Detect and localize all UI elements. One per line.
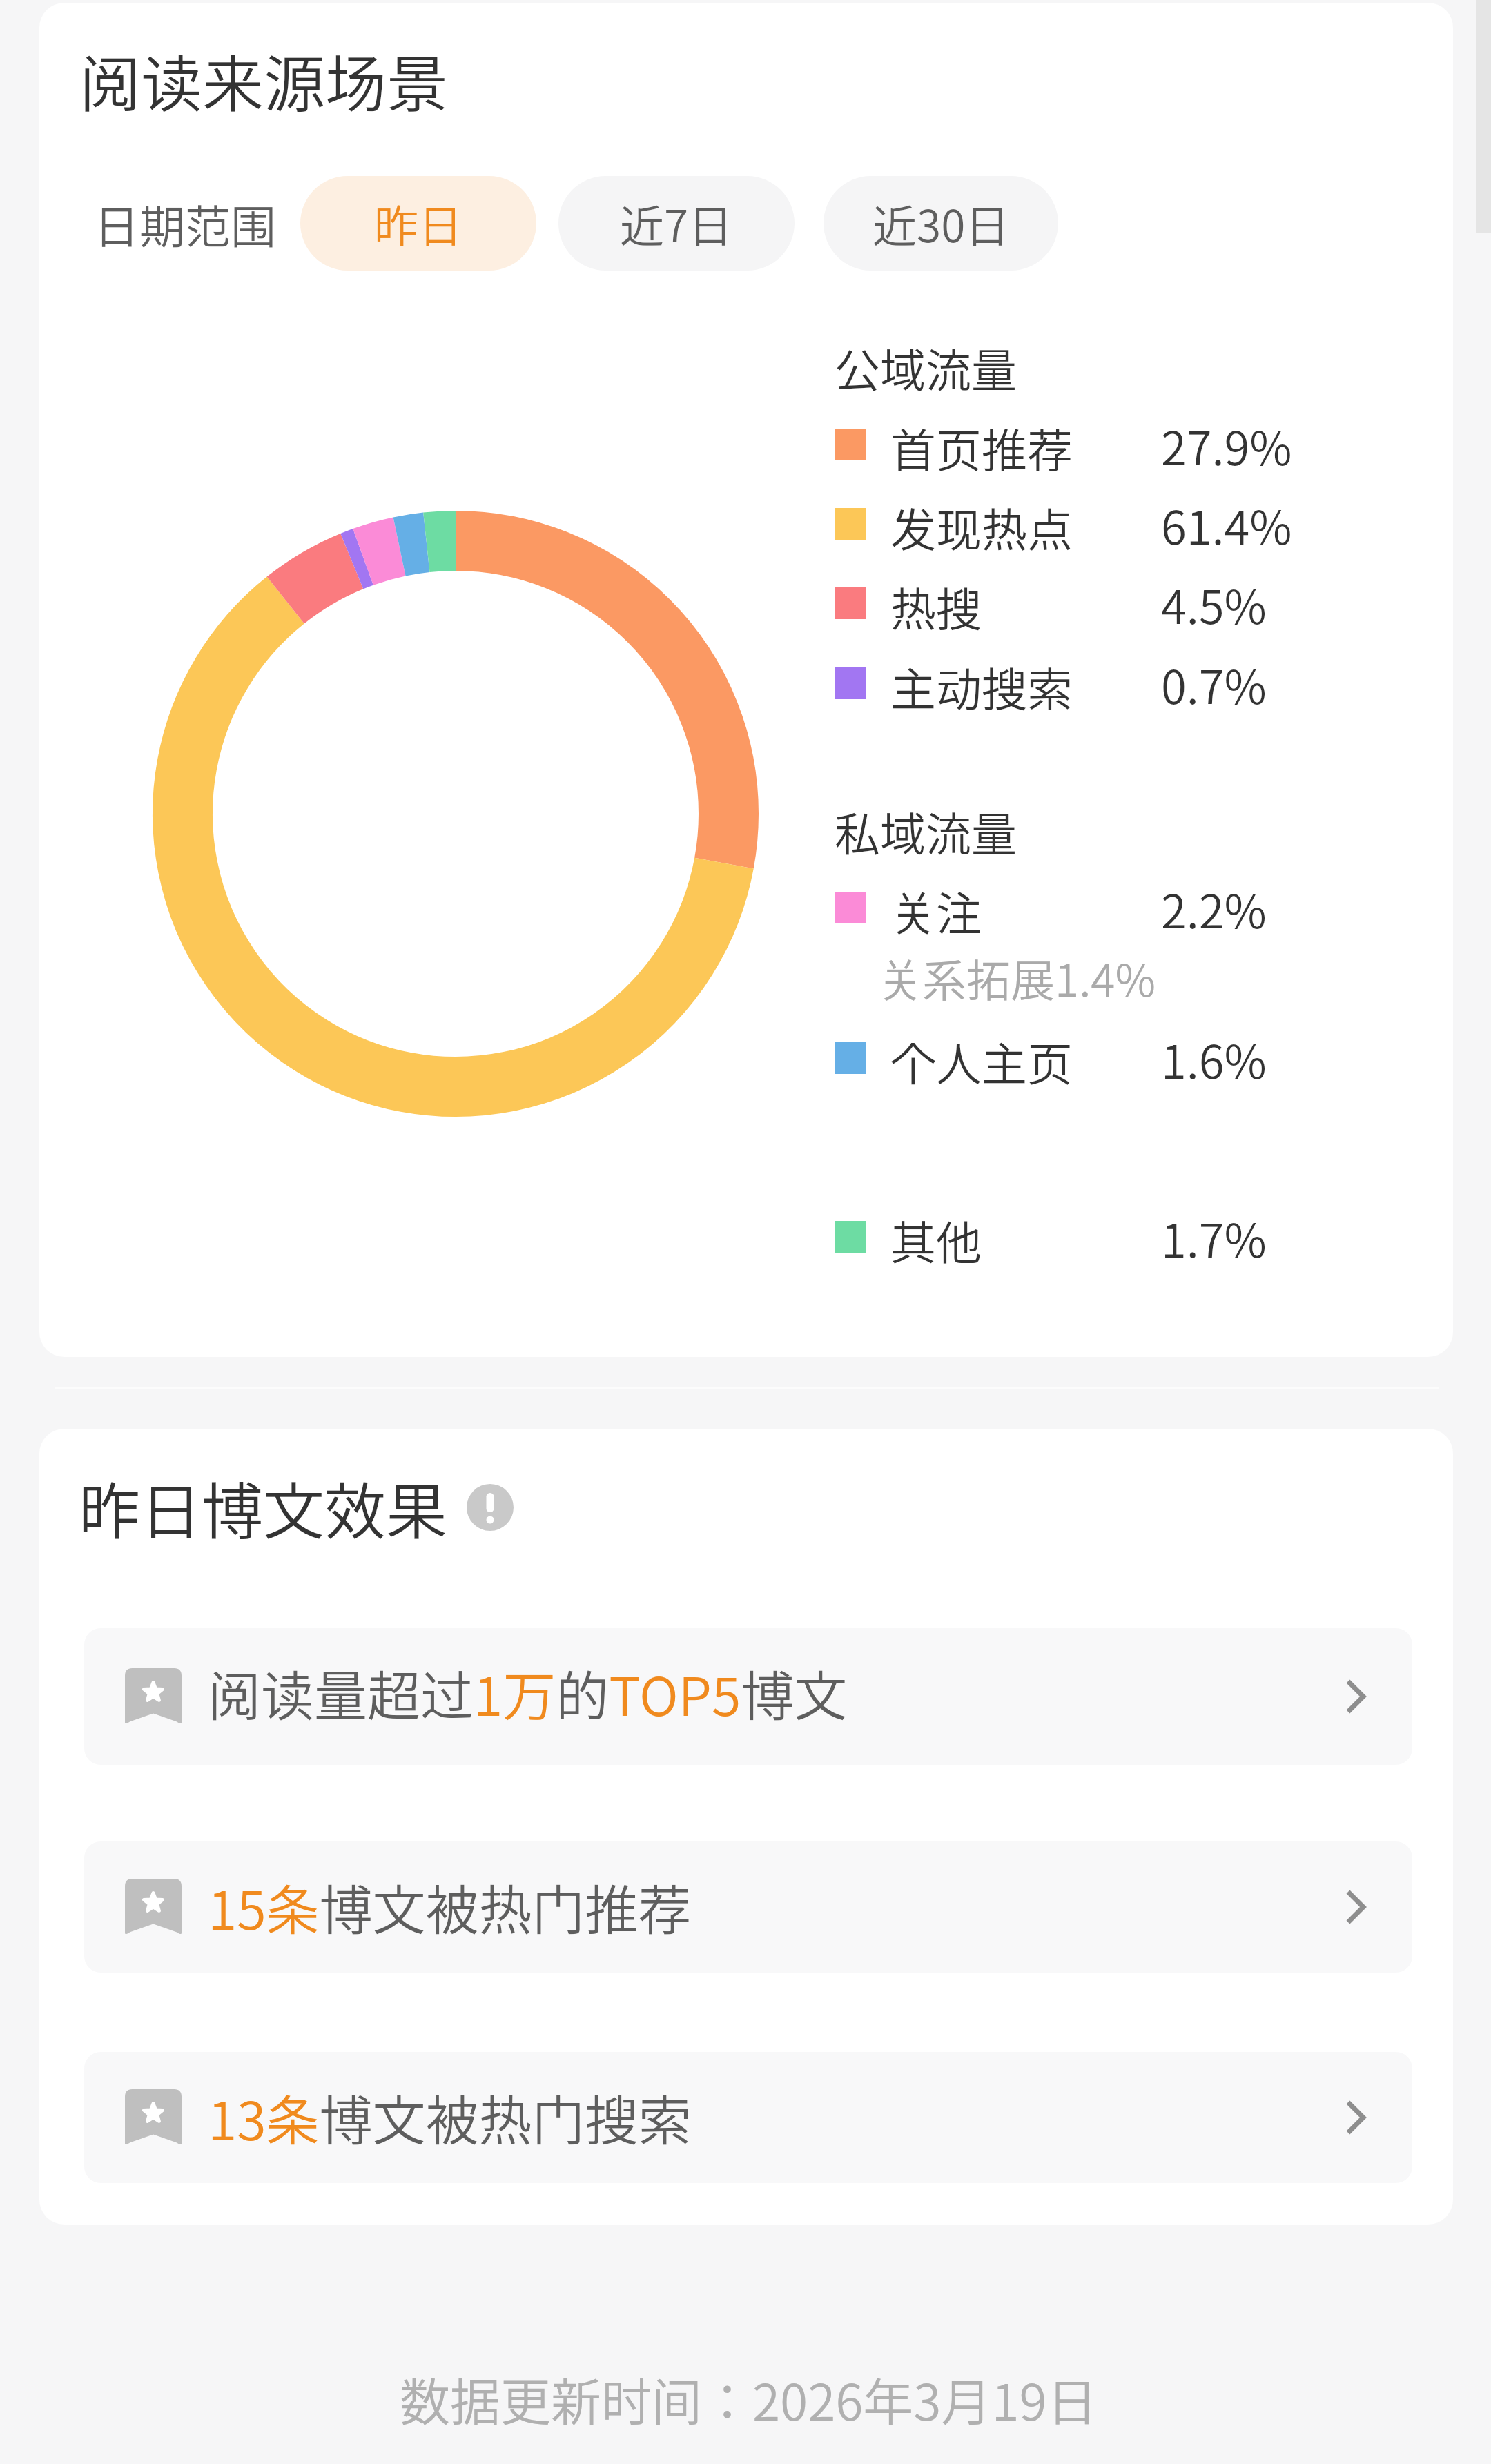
staticText: 4.5% — [1161, 570, 1267, 637]
button[interactable]: 说明 — [467, 1484, 514, 1531]
staticText: 阅读量超过1万的TOP5博文 — [208, 1654, 848, 1731]
staticText: 公域流量 — [835, 334, 1017, 400]
button[interactable]: 昨日 — [300, 176, 536, 271]
staticText: 主动搜索 — [890, 653, 1073, 719]
staticText: 个人主页 — [890, 1028, 1073, 1094]
button[interactable]: 阅读量超过1万的TOP5博文 — [84, 1628, 1412, 1765]
staticText: 27.9% — [1161, 411, 1292, 478]
staticText: 日期范围 — [94, 190, 276, 257]
staticText: 近7日 — [620, 191, 733, 255]
button[interactable]: 近7日 — [558, 176, 795, 271]
staticText: 61.4% — [1161, 491, 1292, 558]
staticText: 热搜 — [890, 573, 982, 639]
staticText: 近30日 — [873, 191, 1010, 255]
button[interactable]: 13条博文被热门搜索 — [84, 2052, 1412, 2183]
staticText: 其他 — [890, 1206, 982, 1273]
staticText: 昨日 — [374, 191, 462, 255]
staticText: 阅读来源场景 — [79, 35, 448, 124]
staticText: 0.7% — [1161, 650, 1267, 717]
staticText: 1.6% — [1161, 1025, 1267, 1092]
staticText: 发现热点 — [890, 493, 1073, 560]
staticText: 数据更新时间：2026年3月19日 — [400, 2362, 1098, 2435]
staticText: 2.2% — [1161, 874, 1267, 941]
staticText: 关注 — [890, 877, 982, 943]
button[interactable]: 近30日 — [824, 176, 1058, 271]
button[interactable]: 15条博文被热门推荐 — [84, 1841, 1412, 1973]
staticText: 私域流量 — [835, 798, 1017, 864]
staticText: 昨日博文效果 — [79, 1463, 447, 1552]
staticText: 15条博文被热门推荐 — [208, 1868, 692, 1945]
staticText: 13条博文被热门搜索 — [208, 2079, 692, 2155]
staticText: 首页推荐 — [890, 414, 1073, 480]
staticText: 1.7% — [1161, 1204, 1267, 1271]
staticText: 关系拓展1.4% — [878, 946, 1156, 1010]
